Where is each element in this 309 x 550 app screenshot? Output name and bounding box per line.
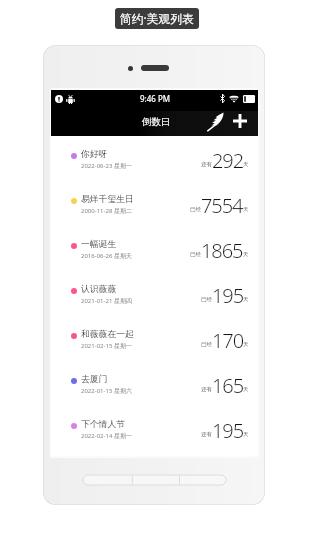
staticText: 2021-02-15 星期一 <box>81 342 132 350</box>
button[interactable]: 去厦门 <box>51 361 258 406</box>
staticText: 2021-01-21 星期四 <box>81 297 132 305</box>
staticText: 2016-06-26 星期天 <box>81 252 132 260</box>
staticText: 2022-01-15 星期六 <box>81 387 132 395</box>
staticText: 倒数日 <box>142 116 171 128</box>
staticText: 一幅诞生 <box>81 239 117 250</box>
staticText: 和薇薇在一起 <box>81 329 134 340</box>
staticText: 天 <box>243 341 249 348</box>
staticText: 还有 <box>201 431 212 438</box>
button[interactable]: 和薇薇在一起 <box>51 316 258 361</box>
staticText: 简约·美观列表 <box>120 10 194 26</box>
staticText: 2022-06-23 星期一 <box>81 162 132 170</box>
staticText: 还有 <box>201 161 212 168</box>
staticText: 天 <box>243 431 249 438</box>
button[interactable]: 认识薇薇 <box>51 271 258 316</box>
staticText: 去厦门 <box>81 374 108 385</box>
staticText: 7554 <box>201 192 243 219</box>
staticText: 2022-02-14 星期一 <box>81 432 132 440</box>
button[interactable]: 下个情人节 <box>51 406 258 451</box>
button[interactable]: 一幅诞生 <box>51 226 258 271</box>
staticText: 9:46 PM <box>140 93 171 104</box>
staticText: 易烊千玺生日 <box>81 194 134 205</box>
staticText: 天 <box>243 296 249 303</box>
button[interactable]: 你好呀 <box>51 136 258 181</box>
staticText: 天 <box>243 386 249 393</box>
staticText: 认识薇薇 <box>81 284 117 295</box>
staticText: 已经 <box>201 296 212 303</box>
staticText: 已经 <box>190 206 201 213</box>
staticText: 天 <box>243 251 249 258</box>
staticText: 292 <box>212 147 243 174</box>
staticText: 下个情人节 <box>81 419 125 430</box>
staticText: 2000-11-28 星期二 <box>81 207 132 215</box>
button[interactable]: 易烊千玺生日 <box>51 181 258 226</box>
staticText: 已经 <box>190 251 201 258</box>
staticText: 天 <box>243 161 249 168</box>
staticText: 已经 <box>201 341 212 348</box>
staticText: 1865 <box>201 237 243 264</box>
staticText: 还有 <box>201 386 212 393</box>
staticText: 170 <box>212 327 243 354</box>
button[interactable]: 简约·美观列表 <box>115 8 199 29</box>
staticText: 195 <box>212 417 243 444</box>
staticText: 天 <box>243 206 249 213</box>
staticText: 195 <box>212 282 243 309</box>
button[interactable]: Add <box>230 111 250 131</box>
staticText: 你好呀 <box>81 149 108 160</box>
staticText: 165 <box>212 372 243 399</box>
button[interactable]: Write new entry <box>205 111 225 131</box>
